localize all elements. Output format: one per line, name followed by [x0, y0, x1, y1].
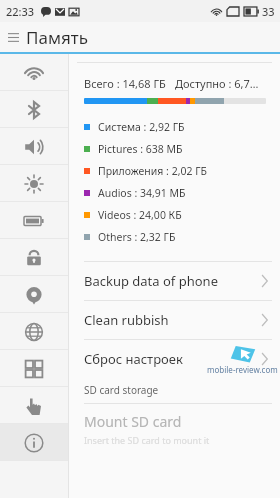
button[interactable]: Videos : 24,00 КБ [84, 204, 280, 226]
button[interactable]: Сброс настроек [84, 340, 268, 378]
button[interactable]: Clean rubbish [84, 301, 268, 339]
button[interactable]: Menu [0, 24, 26, 50]
button[interactable]: Wi-Fi [0, 54, 68, 91]
staticText: Доступно : 6,7… [175, 76, 259, 91]
button[interactable]: Apps [0, 350, 68, 387]
staticText: Clean rubbish [84, 311, 169, 329]
staticText: Mount SD card [84, 412, 182, 431]
staticText: 33 [262, 4, 275, 19]
staticText: Audios : 34,91 МБ [98, 186, 186, 200]
button[interactable]: Battery [0, 202, 68, 239]
button[interactable]: Network [0, 313, 68, 350]
staticText: Система : 2,92 ГБ [98, 120, 185, 134]
staticText: Insert the SD card to mount it [84, 434, 210, 446]
staticText: Pictures : 638 МБ [98, 142, 183, 156]
button[interactable]: Others : 2,32 ГБ [84, 226, 280, 248]
staticText: Others : 2,32 ГБ [98, 230, 176, 244]
staticText: Приложения : 2,02 ГБ [98, 164, 207, 178]
button[interactable]: Security [0, 239, 68, 276]
staticText: 22:33 [6, 4, 35, 19]
staticText: Videos : 24,00 КБ [98, 208, 182, 222]
staticText: Сброс настроек [84, 350, 183, 368]
button[interactable]: Pictures : 638 МБ [84, 138, 280, 160]
button[interactable]: Volume [0, 128, 68, 165]
button[interactable]: Bluetooth [0, 91, 68, 128]
button[interactable]: Storage [0, 424, 68, 461]
button[interactable]: Backup data of phone [84, 262, 268, 300]
staticText: Всего : 14,68 ГБ [84, 76, 166, 91]
staticText: SD card storage [84, 383, 159, 397]
button[interactable]: Приложения : 2,02 ГБ [84, 160, 280, 182]
staticText: Backup data of phone [84, 272, 218, 290]
button[interactable]: Система : 2,92 ГБ [84, 116, 280, 138]
button[interactable]: Audios : 34,91 МБ [84, 182, 280, 204]
button[interactable]: Gestures [0, 387, 68, 424]
button[interactable]: Location [0, 276, 68, 313]
button[interactable]: Brightness [0, 165, 68, 202]
staticText: mobile-review.com [207, 364, 278, 375]
staticText: Память [26, 26, 88, 49]
